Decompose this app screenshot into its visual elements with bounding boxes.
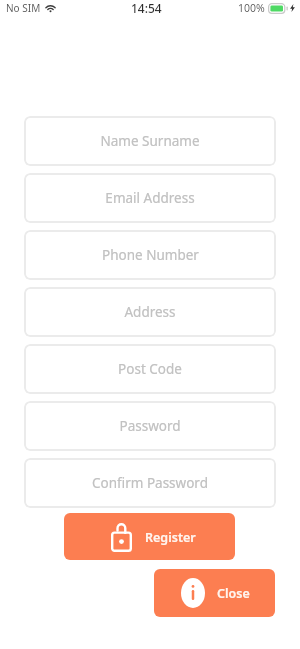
button[interactable]: Address xyxy=(24,287,276,337)
staticText: Post Code xyxy=(118,360,182,378)
button[interactable]: Email Address xyxy=(24,173,276,223)
staticText: Name Surname xyxy=(100,132,200,150)
button[interactable]: Password xyxy=(24,401,276,451)
staticText: Password xyxy=(119,417,181,435)
other: Close xyxy=(181,578,205,608)
staticText: No SIM xyxy=(6,1,41,15)
button[interactable]: Confirm Password xyxy=(24,458,276,508)
button[interactable]: Register xyxy=(64,513,235,560)
staticText: Address xyxy=(124,303,176,321)
staticText: Close xyxy=(217,585,250,602)
staticText: Confirm Password xyxy=(92,474,208,492)
other: Register xyxy=(111,522,132,552)
button[interactable]: Name Surname xyxy=(24,116,276,166)
staticText: 14:54 xyxy=(131,0,162,16)
staticText: 100% xyxy=(238,1,265,15)
staticText: Phone Number xyxy=(102,246,199,264)
staticText: Register xyxy=(145,529,196,546)
staticText: Email Address xyxy=(105,189,195,207)
button[interactable]: Post Code xyxy=(24,344,276,394)
button[interactable]: Close xyxy=(154,569,275,617)
button[interactable]: Phone Number xyxy=(24,230,276,280)
